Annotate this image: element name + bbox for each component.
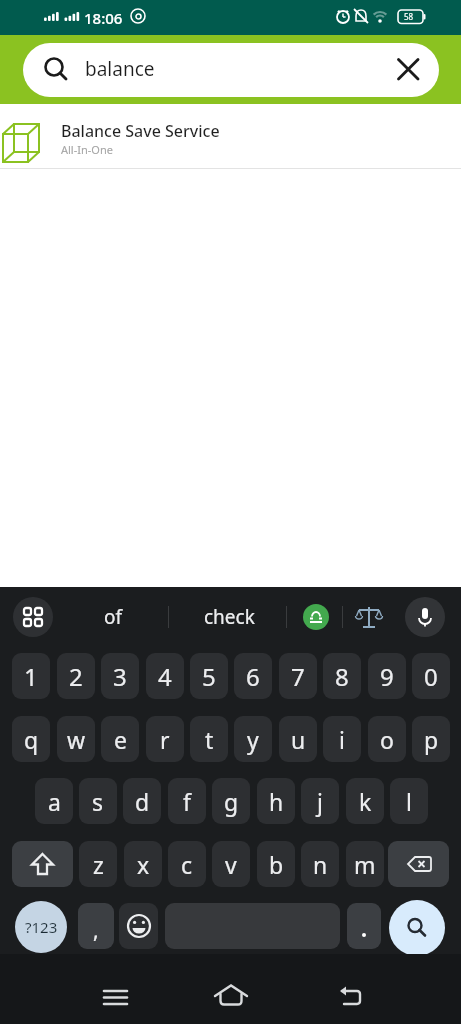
staticText: l [406, 786, 412, 817]
button[interactable] [388, 841, 449, 887]
button[interactable] [12, 841, 73, 887]
staticText: ?123 [25, 917, 58, 937]
staticText: o [380, 724, 394, 755]
button[interactable]: q [12, 716, 50, 762]
button[interactable]: y [234, 716, 272, 762]
staticText: All-In-One [61, 142, 113, 157]
button[interactable] [92, 983, 139, 1011]
staticText: r [160, 724, 170, 755]
button[interactable]: 9 [368, 653, 406, 699]
button[interactable]: 6 [234, 653, 272, 699]
button[interactable]: p [412, 716, 450, 762]
button[interactable]: ?123 [15, 901, 67, 953]
button[interactable]: w [57, 716, 95, 762]
staticText: t [205, 724, 214, 755]
staticText: 9 [380, 660, 394, 693]
button[interactable]: 4 [146, 653, 184, 699]
staticText: 7 [291, 660, 305, 693]
button[interactable]: 7 [279, 653, 317, 699]
button[interactable]: n [301, 841, 339, 887]
button[interactable] [405, 597, 445, 637]
staticText: s [92, 786, 104, 817]
staticText: d [135, 786, 150, 817]
button[interactable]: 1 [12, 653, 50, 699]
button[interactable]: g [212, 778, 250, 824]
button[interactable]: b [257, 841, 295, 887]
staticText: k [359, 786, 372, 817]
staticText: j [317, 786, 323, 817]
button[interactable]: e [101, 716, 139, 762]
staticText: 5 [202, 660, 216, 693]
staticText: 1 [24, 660, 38, 693]
button[interactable]: k [346, 778, 384, 824]
button[interactable] [13, 597, 53, 637]
staticText: u [291, 724, 306, 755]
button[interactable] [303, 604, 329, 630]
staticText: 8 [335, 660, 349, 693]
button[interactable] [327, 981, 375, 1011]
button[interactable]: l [390, 778, 428, 824]
button[interactable]: check [186, 596, 273, 638]
button[interactable] [347, 903, 381, 949]
staticText: 0 [424, 660, 438, 693]
button[interactable] [207, 980, 255, 1010]
button[interactable]: f [168, 778, 206, 824]
staticText: 2 [69, 660, 83, 693]
staticText: balance [85, 56, 155, 82]
button[interactable]: 3 [101, 653, 139, 699]
staticText: Balance Save Service [61, 120, 220, 142]
staticText: e [114, 724, 127, 755]
staticText: w [67, 724, 86, 755]
staticText: of [104, 604, 123, 630]
button[interactable]: s [79, 778, 117, 824]
staticText: 18:06 [84, 8, 123, 28]
staticText: v [225, 849, 237, 880]
button[interactable]: h [257, 778, 295, 824]
staticText: check [204, 604, 255, 630]
button[interactable]: of [75, 596, 151, 638]
staticText: q [24, 724, 39, 755]
staticText: 6 [246, 660, 260, 693]
button[interactable] [119, 903, 158, 949]
button[interactable]: z [79, 841, 117, 887]
button[interactable]: 0 [412, 653, 450, 699]
staticText: m [354, 849, 376, 880]
staticText: , [93, 916, 99, 945]
button[interactable]: 5 [190, 653, 228, 699]
staticText: h [269, 786, 284, 817]
button[interactable] [353, 601, 385, 633]
staticText: g [224, 786, 239, 817]
staticText: 4 [158, 660, 172, 693]
button[interactable]: balance [23, 43, 439, 97]
button[interactable]: o [368, 716, 406, 762]
button[interactable]: a [35, 778, 73, 824]
staticText: b [269, 849, 284, 880]
button[interactable]: u [279, 716, 317, 762]
button[interactable]: v [212, 841, 250, 887]
staticText: a [48, 786, 61, 817]
button[interactable]: Balance Save Service [0, 104, 461, 168]
button[interactable]: x [124, 841, 162, 887]
staticText: f [183, 786, 191, 817]
button[interactable]: t [190, 716, 228, 762]
button[interactable]: d [123, 778, 161, 824]
button[interactable] [397, 58, 421, 82]
button[interactable]: , [78, 903, 114, 949]
button[interactable] [389, 900, 445, 956]
button[interactable]: i [323, 716, 361, 762]
staticText: c [181, 849, 193, 880]
button[interactable]: c [168, 841, 206, 887]
staticText: n [313, 849, 328, 880]
button[interactable]: 2 [57, 653, 95, 699]
staticText: i [339, 724, 345, 755]
staticText: x [137, 849, 150, 880]
staticText: z [93, 849, 104, 880]
button[interactable]: m [346, 841, 384, 887]
staticText: y [247, 724, 259, 755]
staticText: 58 [404, 11, 414, 22]
button[interactable]: r [146, 716, 184, 762]
button[interactable]: j [301, 778, 339, 824]
staticText: 3 [113, 660, 127, 693]
button[interactable]: 8 [323, 653, 361, 699]
